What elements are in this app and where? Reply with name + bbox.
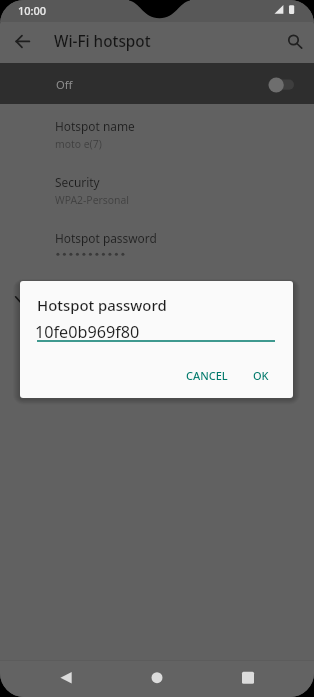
button[interactable]: Off	[0, 63, 314, 104]
button[interactable]: Back	[9, 29, 37, 57]
button[interactable]: OK	[245, 363, 277, 388]
staticText: Hotspot password	[55, 230, 157, 246]
staticText: WPA2-Personal	[55, 193, 129, 207]
staticText: moto e(7)	[55, 137, 102, 151]
staticText: Hotspot password	[37, 295, 167, 315]
button[interactable]: Search	[280, 29, 308, 57]
staticText: OK	[253, 368, 269, 383]
button[interactable]: CANCEL	[178, 363, 236, 388]
staticText: CANCEL	[186, 368, 228, 383]
staticText: Security	[55, 174, 100, 190]
button[interactable]: Hotspot password	[0, 216, 314, 272]
button[interactable]: Hotspot name	[0, 104, 314, 160]
staticText: 10fe0b969f80	[35, 321, 140, 343]
staticText: Wi-Fi hotspot	[54, 31, 151, 52]
staticText: 10:00	[18, 3, 47, 18]
staticText: Hotspot name	[55, 118, 135, 134]
button[interactable]: Security	[0, 160, 314, 216]
staticText: Off	[56, 77, 73, 92]
